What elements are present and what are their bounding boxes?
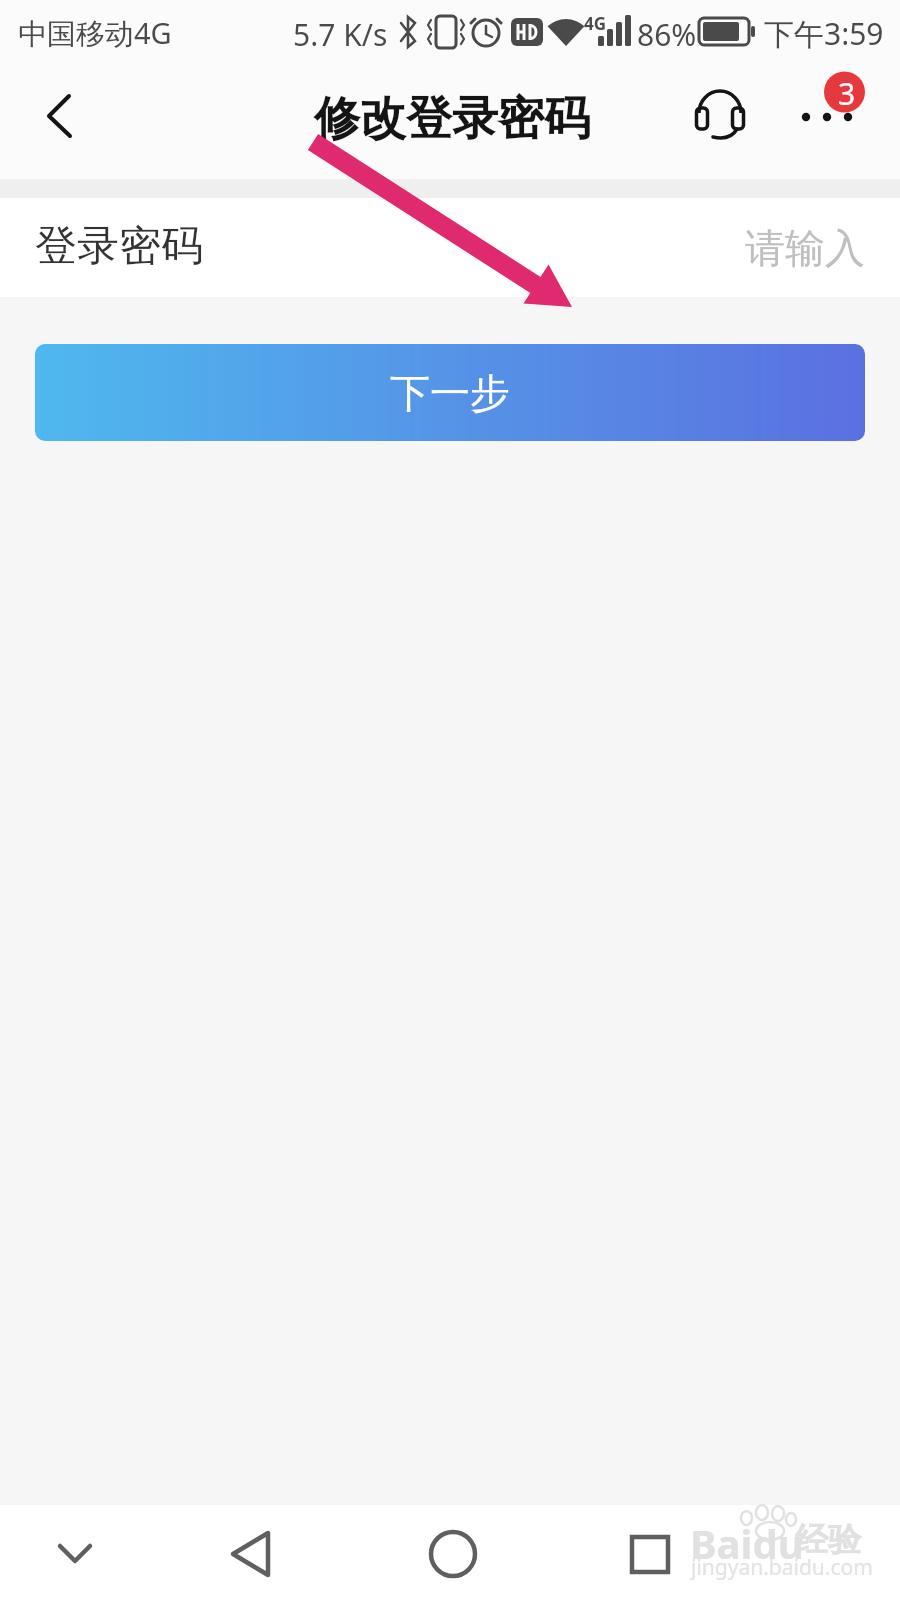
staticText: jingyan.baidu.com [691,1553,873,1582]
button[interactable] [680,80,760,160]
staticText: 登录密码 [35,220,203,273]
button[interactable]: 下一步 [35,344,865,441]
button[interactable]: 3 [790,70,880,170]
staticText: Baidu [690,1516,804,1570]
staticText: 修改登录密码 [314,90,590,148]
button[interactable]: 登录密码 [0,198,900,297]
staticText: 下一步 [390,368,510,418]
staticText: 5.7 K/s [293,14,388,55]
staticText: 请输入 [745,223,865,273]
staticText: 86% [637,14,697,55]
staticText: 中国移动4G [18,13,172,53]
staticText: 4G [584,12,607,35]
button[interactable] [0,60,80,179]
staticText: 3 [838,73,856,114]
staticText: 下午3:59 [764,13,884,54]
staticText: 经验 [795,1519,861,1561]
